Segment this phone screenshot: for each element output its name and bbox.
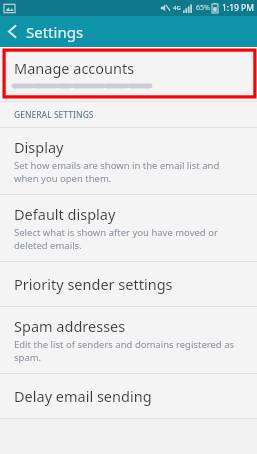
staticText: 4G bbox=[173, 4, 181, 12]
button[interactable]: Display bbox=[0, 128, 257, 194]
staticText: 65% bbox=[196, 3, 210, 13]
staticText: Spam addresses bbox=[14, 316, 126, 336]
staticText: GENERAL SETTINGS bbox=[14, 109, 94, 121]
button[interactable]: Back bbox=[0, 18, 21, 45]
staticText: Manage accounts bbox=[14, 58, 135, 78]
staticText: Default display bbox=[14, 204, 116, 224]
staticText: Display bbox=[14, 137, 64, 157]
button[interactable]: Default display bbox=[0, 195, 257, 261]
staticText: Priority sender settings bbox=[14, 274, 173, 294]
staticText: Edit the list of senders and domains reg… bbox=[14, 338, 245, 364]
staticText: Delay email sending bbox=[14, 386, 152, 406]
button[interactable]: Priority sender settings bbox=[0, 262, 257, 306]
staticText: 1:19 PM bbox=[222, 2, 254, 14]
button[interactable]: Manage accounts bbox=[0, 47, 257, 101]
button[interactable]: Spam addresses bbox=[0, 307, 257, 373]
staticText: Set how emails are shown in the email li… bbox=[14, 159, 245, 185]
button[interactable]: Delay email sending bbox=[0, 374, 257, 418]
staticText: Select what is shown after you have move… bbox=[14, 226, 245, 252]
staticText: Settings bbox=[26, 22, 84, 42]
